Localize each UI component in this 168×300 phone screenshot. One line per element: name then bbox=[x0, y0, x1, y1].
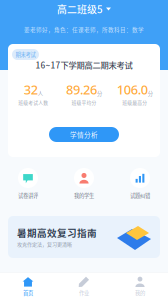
staticText: 高二班级5 bbox=[57, 2, 103, 16]
staticText: 学情分析 bbox=[70, 130, 98, 139]
staticText: 暑期高效复习指南 bbox=[17, 225, 97, 239]
staticText: 人 bbox=[38, 89, 43, 97]
staticText: 89.26 bbox=[66, 81, 97, 98]
staticText: 试卷讲评 bbox=[18, 192, 38, 199]
button[interactable]: 我的 bbox=[112, 273, 168, 300]
staticText: 首页 bbox=[23, 289, 33, 297]
staticText: 攻克作定法，复习更清晰 bbox=[17, 240, 72, 248]
staticText: 分 bbox=[97, 89, 102, 97]
button[interactable]: 我的学生 bbox=[56, 168, 112, 199]
staticText: 姜老师好，角色：任课老师，所教科目：数学 bbox=[24, 25, 144, 33]
staticText: 班级最高分 bbox=[122, 99, 147, 106]
staticText: 我的学生 bbox=[74, 192, 94, 199]
staticText: 32 bbox=[24, 81, 38, 98]
button[interactable]: 学情分析 bbox=[49, 127, 119, 142]
staticText: 班级考试人数 bbox=[18, 99, 48, 106]
button[interactable]: 暑期高效复习指南 bbox=[8, 216, 160, 258]
staticText: 班级平均分 bbox=[71, 99, 96, 106]
staticText: 16~17下学期高二期末考试 bbox=[35, 59, 132, 71]
button[interactable]: 作业 bbox=[56, 273, 112, 300]
staticText: 我的 bbox=[135, 289, 145, 297]
staticText: 作业 bbox=[79, 289, 89, 297]
staticText: 试题纠错 bbox=[130, 192, 150, 199]
staticText: 106.0 bbox=[117, 81, 148, 98]
button[interactable]: 试题纠错 bbox=[112, 168, 168, 199]
staticText: 分 bbox=[148, 89, 153, 97]
staticText: 期末考试 bbox=[15, 51, 35, 58]
button[interactable]: 首页 bbox=[0, 273, 56, 300]
button[interactable]: 试卷讲评 bbox=[0, 168, 56, 199]
button[interactable]: 高二班级5 bbox=[53, 3, 115, 15]
